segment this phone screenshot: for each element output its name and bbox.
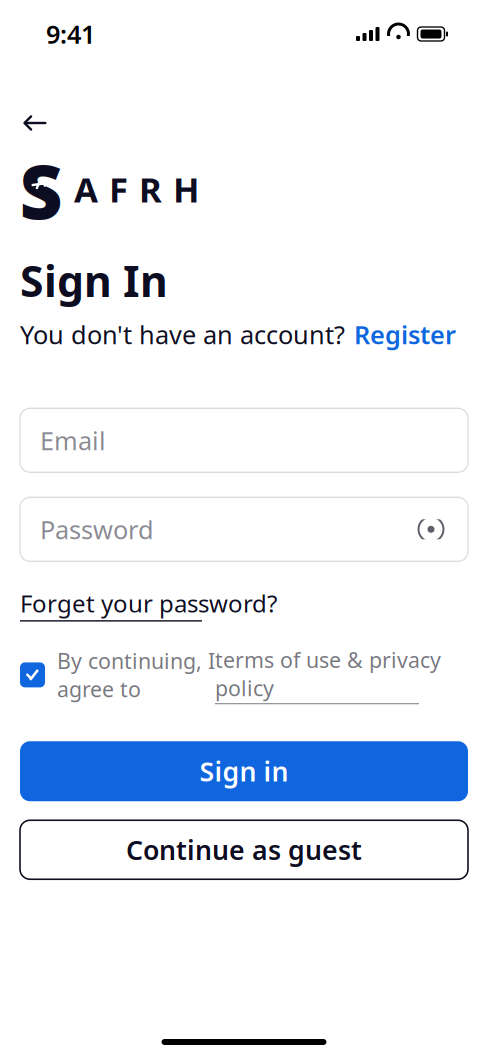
staticText: 9:41: [46, 17, 95, 51]
staticText: By continuing, I agree to: [57, 647, 215, 703]
staticText: Sign in: [199, 753, 288, 789]
staticText: You don't have an account?: [20, 318, 345, 351]
staticText: H: [173, 166, 200, 212]
button[interactable]: Show password: [414, 514, 448, 544]
button[interactable]: Back: [12, 100, 58, 146]
button[interactable]: Forget your password?: [20, 587, 277, 622]
staticText: Password: [40, 512, 154, 546]
staticText: Forget your password?: [20, 587, 277, 619]
staticText: terms of use & privacy policy: [215, 646, 441, 702]
button[interactable]: Register: [354, 318, 456, 351]
staticText: Email: [40, 423, 106, 457]
button[interactable]: By continuing, I agree to: [20, 646, 468, 704]
button[interactable]: Continue as guest: [20, 820, 468, 879]
staticText: Continue as guest: [126, 832, 362, 867]
staticText: S: [19, 140, 62, 240]
staticText: A: [74, 166, 98, 212]
staticText: F: [109, 166, 128, 212]
staticText: Register: [354, 318, 456, 351]
button[interactable]: Sign in: [20, 741, 468, 801]
staticText: R: [139, 166, 162, 212]
staticText: Sign In: [20, 252, 168, 309]
